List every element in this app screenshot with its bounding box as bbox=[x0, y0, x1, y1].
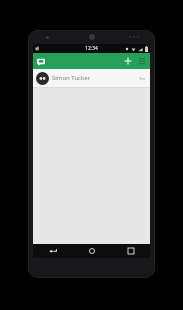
staticText: 1m bbox=[139, 76, 146, 81]
button[interactable]: Recent apps bbox=[111, 244, 150, 258]
button[interactable]: Open navigation drawer bbox=[35, 56, 46, 67]
staticText: Simon Tucker bbox=[52, 74, 139, 82]
button[interactable]: Back bbox=[33, 244, 72, 258]
button[interactable]: More options bbox=[135, 54, 149, 68]
staticText: 12:34 bbox=[85, 45, 98, 52]
button[interactable]: New conversation bbox=[121, 54, 135, 68]
button[interactable]: Home bbox=[72, 244, 111, 258]
button[interactable]: Simon Tucker bbox=[33, 69, 150, 87]
